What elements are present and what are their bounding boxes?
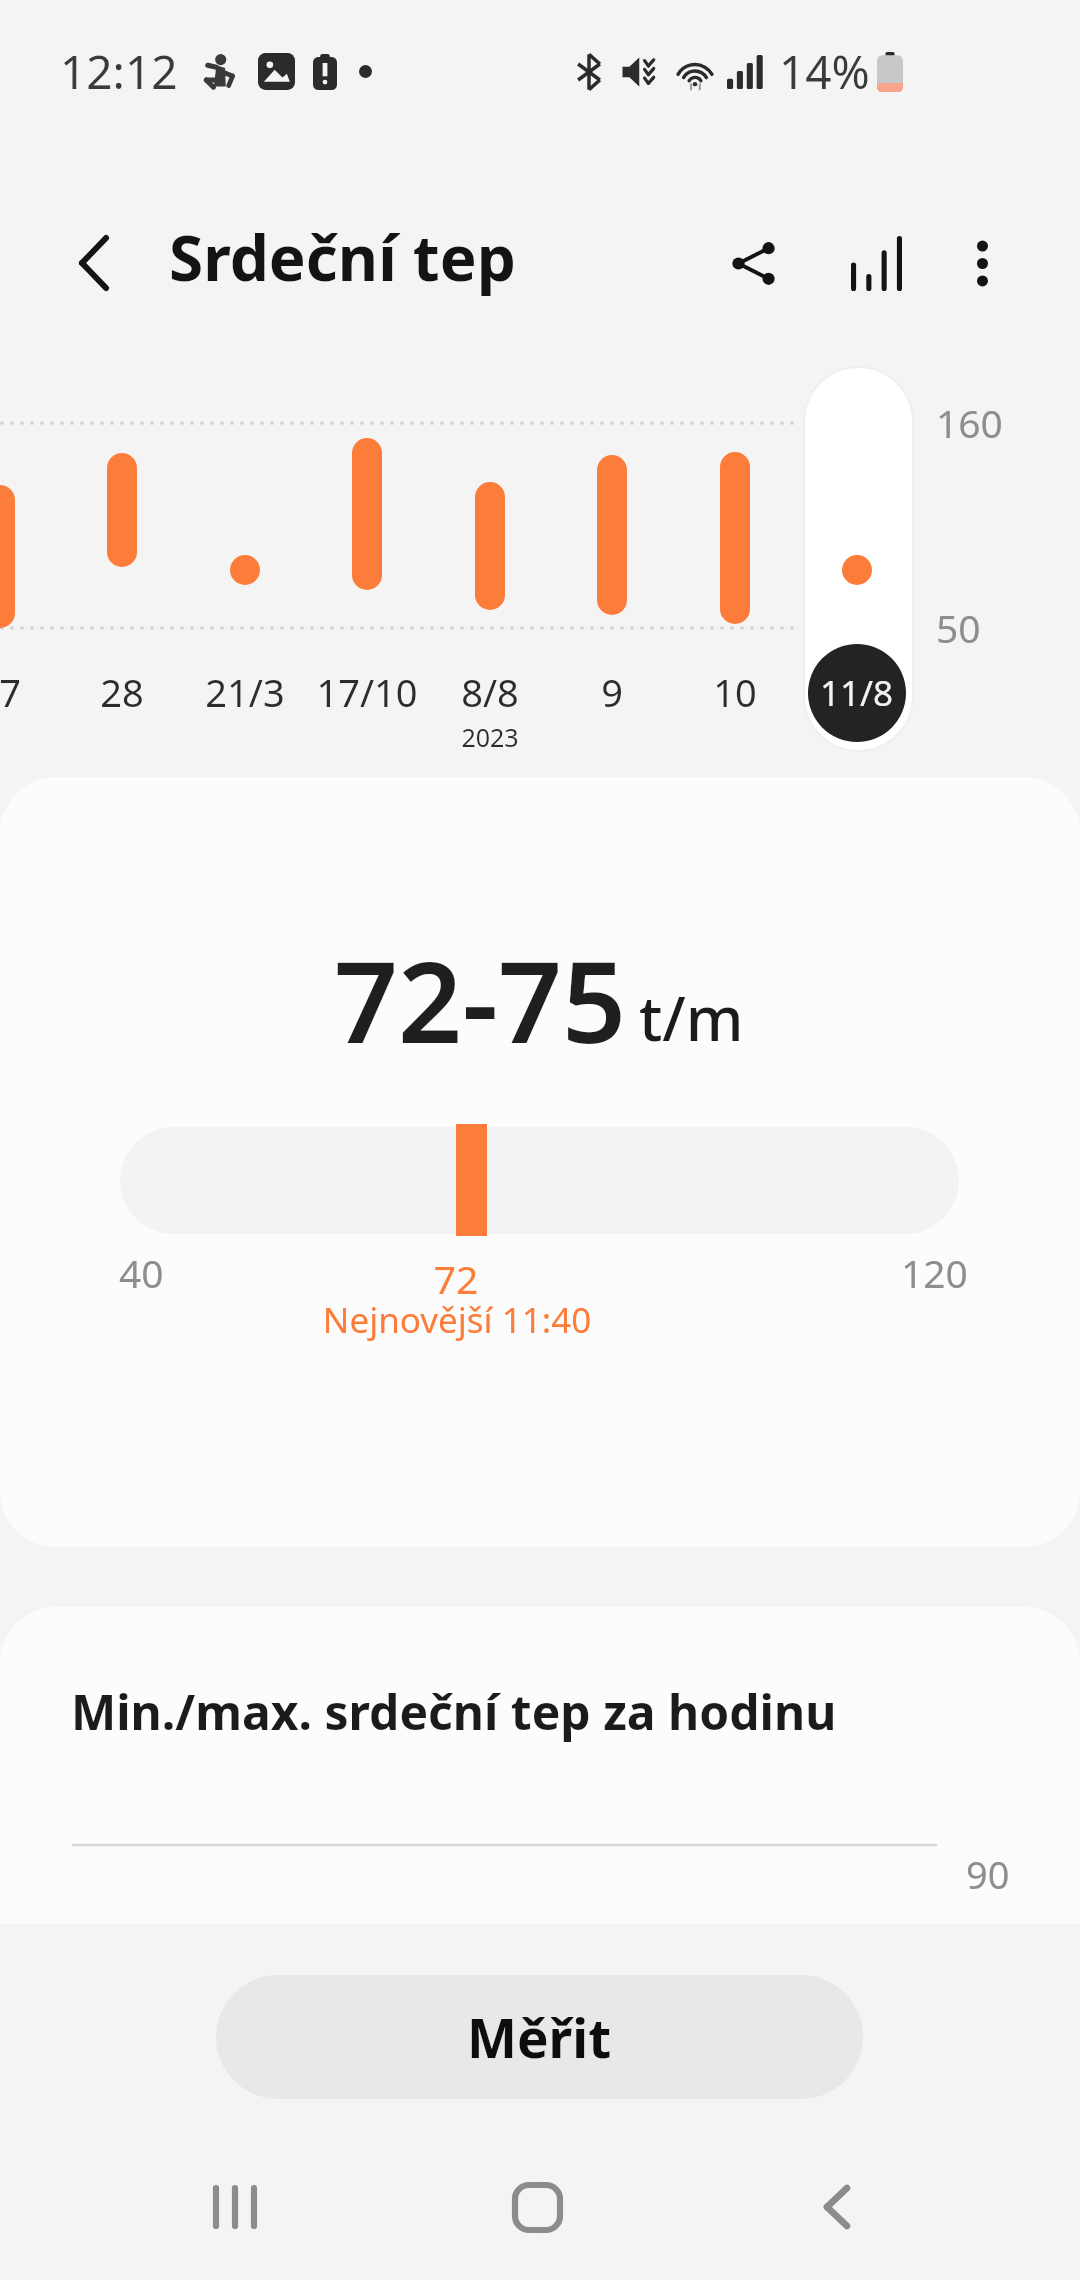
staticText: 90 (966, 1848, 1010, 1900)
staticText: 7 (0, 666, 110, 718)
staticText: 14% (779, 40, 870, 103)
staticText: 160 (936, 396, 1003, 449)
staticText: 2023 (390, 720, 590, 754)
button[interactable]: Share (700, 209, 823, 317)
button[interactable]: Back (778, 2151, 898, 2280)
button[interactable]: Recent apps (174, 2151, 294, 2280)
button[interactable]: Chart view (823, 209, 929, 317)
staticText: Nejnovější 11:40 (157, 1296, 757, 1344)
staticText: 40 (119, 1246, 164, 1299)
button[interactable]: Selected 11/8 (805, 368, 912, 750)
staticText: 17/10 (267, 666, 467, 718)
staticText: Srdeční tep (169, 215, 516, 299)
staticText: Měřit (467, 2001, 612, 2073)
staticText: 28 (22, 666, 222, 718)
staticText: 120 (901, 1246, 968, 1299)
staticText: 50 (936, 601, 981, 654)
button[interactable]: More options (929, 209, 1035, 317)
button[interactable]: Back (58, 227, 130, 299)
staticText: 72-75 (334, 923, 627, 1076)
staticText: t/m (639, 976, 744, 1059)
staticText: 12:12 (60, 40, 178, 103)
staticText: 72 (356, 1252, 556, 1305)
staticText: 11/8 (820, 669, 894, 717)
button[interactable]: Home (476, 2151, 596, 2280)
staticText: 10 (635, 666, 835, 718)
staticText: 8/8 (390, 666, 590, 718)
staticText: 9 (512, 666, 712, 718)
staticText: 21/3 (145, 666, 345, 718)
button[interactable]: Měřit (216, 1975, 863, 2099)
staticText: Min./max. srdeční tep za hodinu (71, 1679, 837, 1744)
